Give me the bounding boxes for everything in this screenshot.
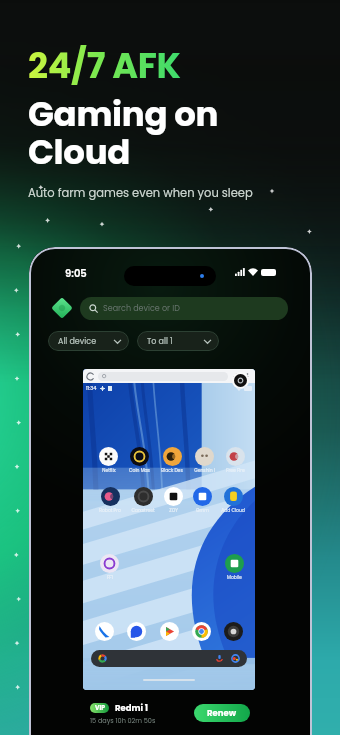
- staticText: Coin Mas: [129, 467, 150, 473]
- button[interactable]: Messages: [127, 622, 146, 641]
- staticText: Carxstreet: [131, 507, 155, 513]
- button[interactable]: Black Des: [163, 447, 182, 466]
- staticText: 9:05: [65, 266, 87, 280]
- staticText: Renew: [207, 707, 237, 719]
- button[interactable]: Google search: [91, 650, 247, 667]
- button[interactable]: Search device or ID: [80, 297, 288, 320]
- staticText: Redmi 1: [115, 702, 149, 714]
- button[interactable]: Gmm: [193, 487, 212, 506]
- button[interactable]: Add Cloud: [224, 487, 243, 506]
- button[interactable]: Renew: [194, 704, 250, 722]
- staticText: 11:34: [86, 385, 97, 392]
- staticText: Auto farm games even when you sleep: [28, 185, 253, 201]
- staticText: Black Des: [161, 467, 183, 473]
- button[interactable]: To all 1: [137, 331, 219, 351]
- staticText: ZOY: [169, 507, 178, 513]
- staticText: Search device or ID: [103, 303, 180, 314]
- button[interactable]: FF1: [100, 554, 119, 573]
- button[interactable]: Netflix: [99, 447, 118, 466]
- button[interactable]: Carxstreet: [134, 487, 153, 506]
- staticText: 15 days 10h 02m 50s: [90, 716, 156, 725]
- button[interactable]: Account: [234, 374, 247, 387]
- button[interactable]: Free Fire: [226, 447, 245, 466]
- button[interactable]: ZOY: [164, 487, 183, 506]
- button[interactable]: Camera: [224, 622, 243, 641]
- button[interactable]: Play Store: [160, 622, 179, 641]
- staticText: Netflix: [102, 467, 116, 473]
- staticText: Robot Pro: [99, 507, 121, 513]
- staticText: Gaming on Cloud: [28, 90, 219, 176]
- staticText: VIP: [95, 704, 105, 712]
- button[interactable]: All device: [48, 331, 129, 351]
- button[interactable]: Genshin I: [195, 447, 214, 466]
- staticText: FF1: [107, 574, 113, 580]
- staticText: To all 1: [147, 336, 173, 347]
- staticText: Add Cloud: [221, 507, 245, 513]
- button[interactable]: Coin Mas: [130, 447, 149, 466]
- staticText: All device: [58, 336, 97, 347]
- button[interactable]: Chrome: [192, 622, 211, 641]
- staticText: 24/7 AFK: [28, 41, 181, 90]
- staticText: Genshin I: [194, 467, 215, 473]
- staticText: Mobile: [227, 574, 242, 580]
- button[interactable]: App logo: [51, 297, 73, 319]
- button[interactable]: VIP: [90, 690, 250, 735]
- button[interactable]: Phone: [95, 622, 114, 641]
- button[interactable]: Mobile: [225, 554, 244, 573]
- staticText: Gmm: [196, 507, 209, 513]
- button[interactable]: Robot Pro: [101, 487, 120, 506]
- staticText: Free Fire: [226, 467, 245, 473]
